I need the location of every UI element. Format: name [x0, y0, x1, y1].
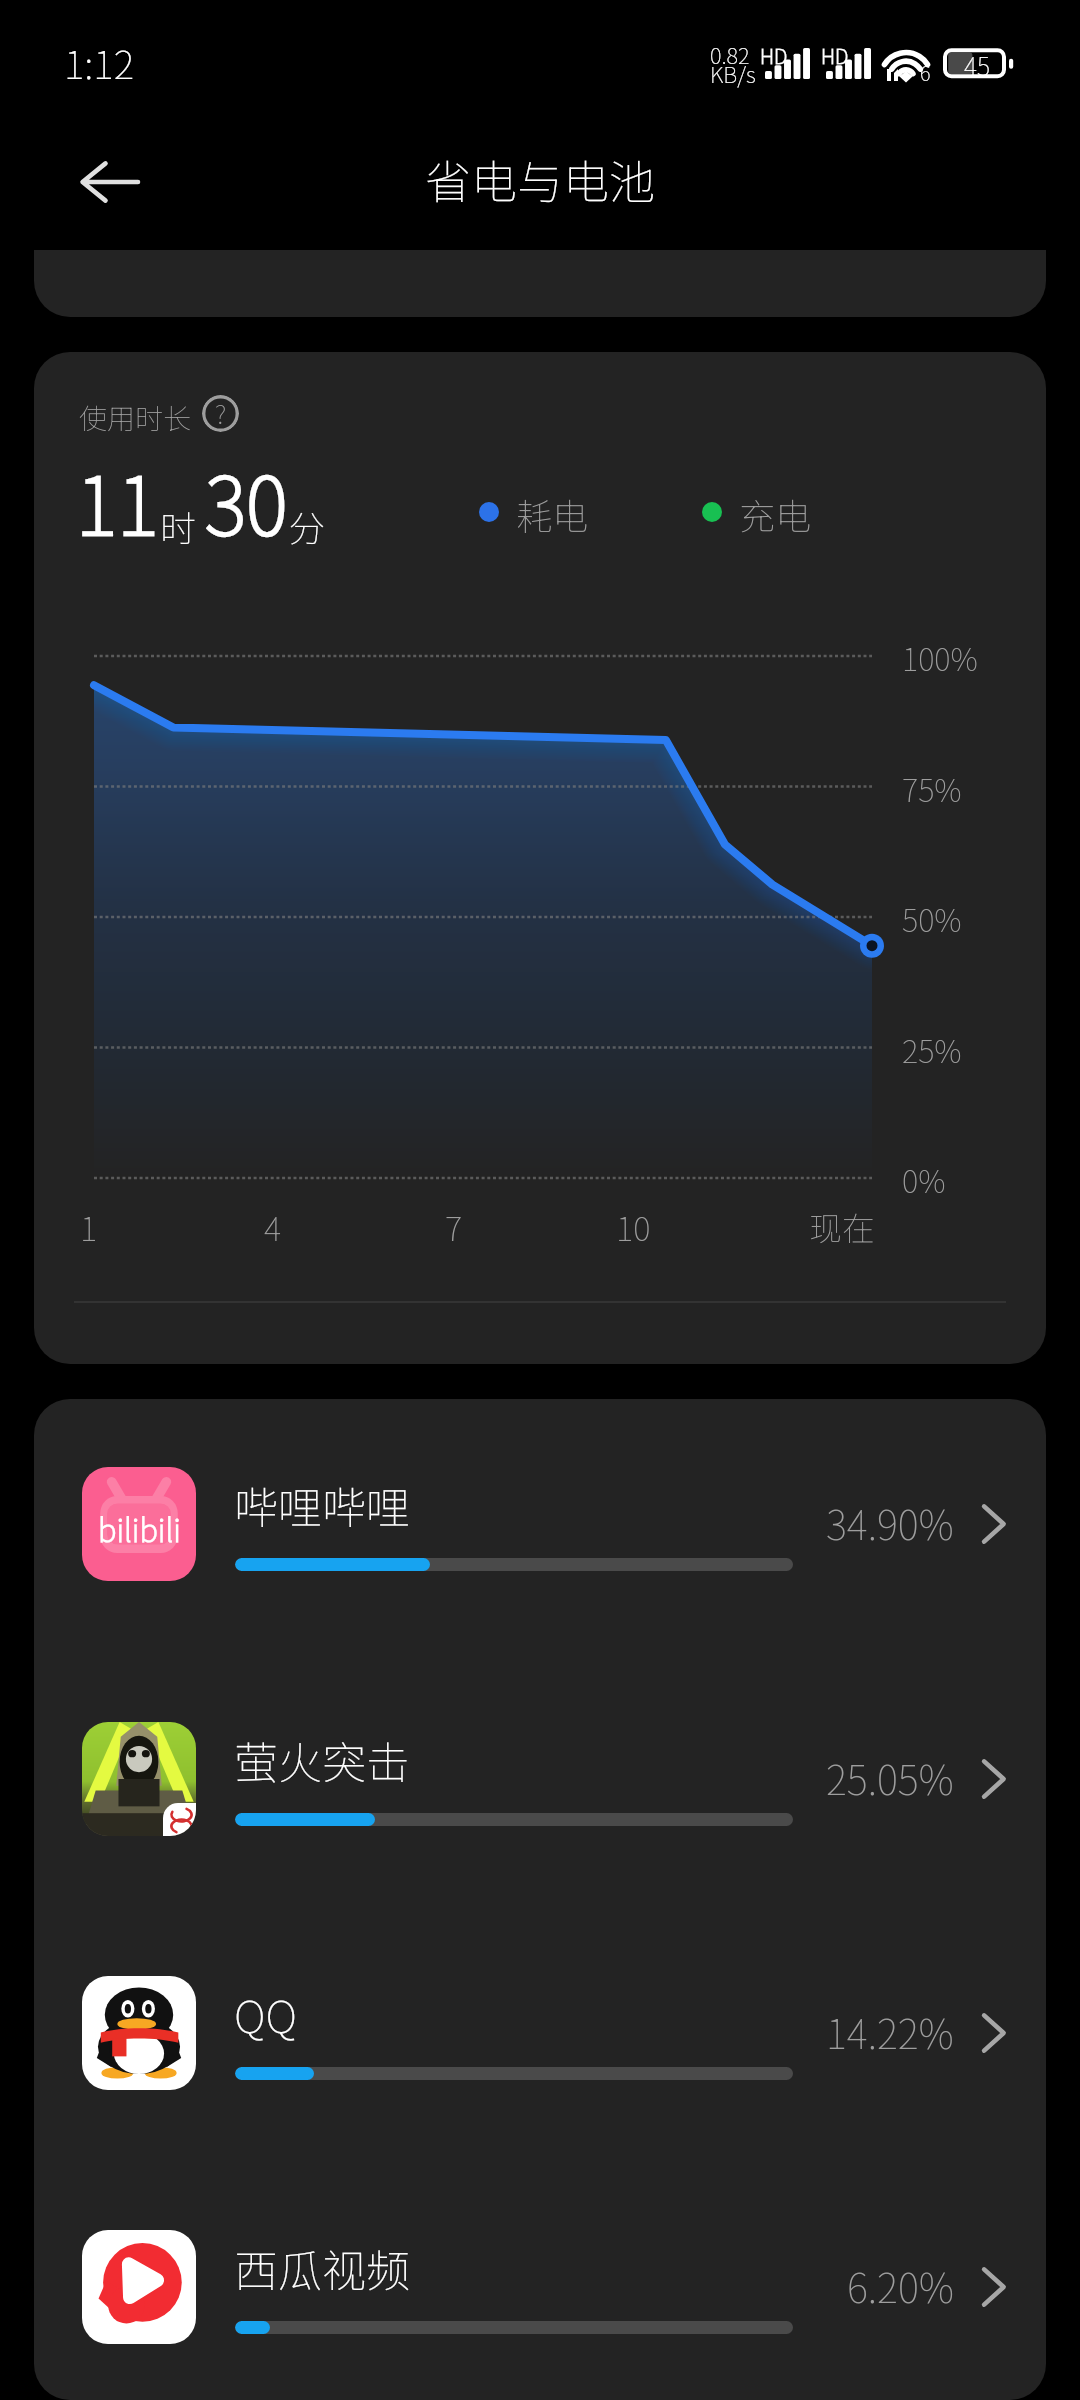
- staticText: 6: [920, 58, 931, 87]
- button[interactable]: 萤火突击: [34, 1652, 1046, 1906]
- staticText: 耗电: [516, 488, 589, 540]
- staticText: 萤火突击: [234, 1728, 410, 1792]
- staticText: 50%: [902, 896, 962, 941]
- staticText: 时: [160, 500, 197, 552]
- staticText: 1:12: [64, 34, 134, 90]
- staticText: HD: [760, 41, 788, 70]
- staticText: 充电: [739, 488, 812, 540]
- staticText: bilibili: [98, 1506, 181, 1551]
- button[interactable]: [34, 250, 1046, 317]
- staticText: 1: [80, 1203, 98, 1251]
- staticText: 25.05%: [826, 1749, 954, 1807]
- staticText: 0%: [902, 1157, 946, 1202]
- staticText: 使用时长: [79, 397, 192, 438]
- staticText: 100%: [902, 635, 978, 680]
- staticText: 西瓜视频: [234, 2236, 410, 2300]
- staticText: 0.82: [710, 38, 750, 70]
- staticText: 省电与电池: [425, 146, 655, 213]
- staticText: 4: [264, 1203, 282, 1251]
- staticText: 34.90%: [826, 1494, 954, 1552]
- staticText: 哔哩哔哩: [234, 1473, 410, 1537]
- staticText: 14.22%: [826, 2003, 954, 2061]
- staticText: 7: [445, 1203, 463, 1251]
- button[interactable]: Help about usage duration: [202, 395, 239, 432]
- button[interactable]: 使用时长: [34, 352, 1046, 1364]
- button[interactable]: QQ: [34, 1906, 1046, 2160]
- staticText: 现在: [809, 1203, 875, 1251]
- staticText: 10: [616, 1203, 651, 1251]
- staticText: 11: [76, 443, 159, 557]
- staticText: 30: [205, 443, 288, 557]
- staticText: 分: [289, 500, 326, 552]
- button[interactable]: Back: [62, 134, 158, 230]
- staticText: 25%: [902, 1027, 962, 1072]
- staticText: 45: [964, 47, 991, 82]
- staticText: KB/s: [710, 57, 756, 89]
- button[interactable]: 西瓜视频: [34, 2160, 1046, 2400]
- staticText: HD: [821, 41, 849, 70]
- button[interactable]: bilibili: [34, 1399, 1046, 1651]
- staticText: 75%: [902, 766, 962, 811]
- staticText: 6.20%: [847, 2257, 954, 2315]
- staticText: ?: [215, 395, 227, 431]
- staticText: QQ: [234, 1982, 297, 2046]
